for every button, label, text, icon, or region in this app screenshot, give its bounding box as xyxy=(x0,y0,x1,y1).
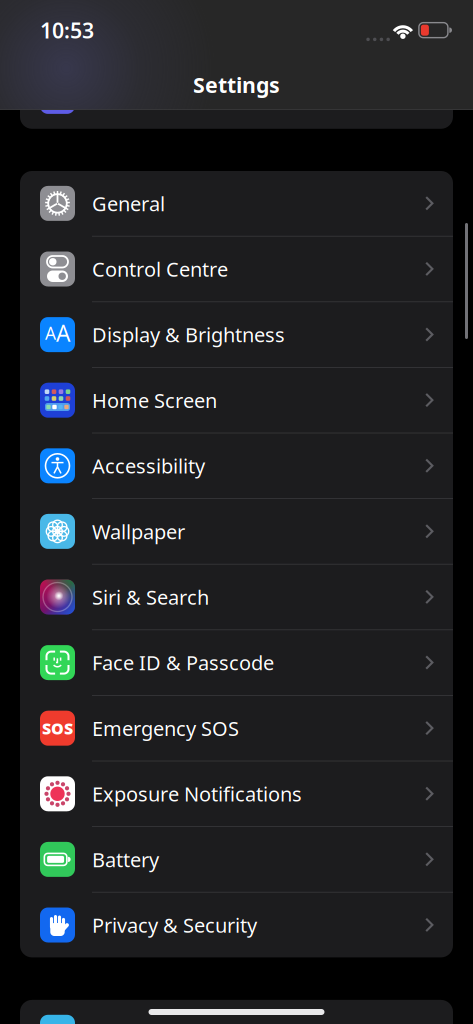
staticText: Focus xyxy=(92,83,146,110)
staticText: SOS xyxy=(42,718,73,739)
staticText: General xyxy=(92,190,165,217)
staticText: Battery xyxy=(92,846,159,873)
button[interactable]: Siri & Search xyxy=(20,565,453,629)
staticText: Privacy & Security xyxy=(92,912,257,938)
staticText: A xyxy=(45,321,56,344)
button[interactable]: App Store xyxy=(20,1000,453,1024)
staticText: Settings xyxy=(193,70,280,99)
button[interactable]: Home Screen xyxy=(20,368,453,433)
button[interactable]: Battery xyxy=(20,827,453,892)
button[interactable]: Wallpaper xyxy=(20,499,453,564)
staticText: Exposure Notifications xyxy=(92,780,302,807)
staticText: Display & Brightness xyxy=(92,321,285,348)
staticText: Home Screen xyxy=(92,387,217,413)
button[interactable]: Accessibility xyxy=(20,433,453,498)
staticText: A xyxy=(56,318,70,348)
button[interactable]: Exposure Notifications xyxy=(20,761,453,826)
button[interactable]: Control Centre xyxy=(20,237,453,301)
staticText: Emergency SOS xyxy=(92,715,239,741)
button[interactable]: General xyxy=(20,171,453,236)
staticText: Siri & Search xyxy=(92,584,209,610)
staticText: Face ID & Passcode xyxy=(92,649,274,676)
button[interactable]: Face ID & Passcode xyxy=(20,630,453,695)
staticText: Accessibility xyxy=(92,452,205,479)
staticText: Control Centre xyxy=(92,256,228,282)
staticText: Wallpaper xyxy=(92,518,185,545)
button[interactable]: SOS xyxy=(20,696,453,761)
button[interactable]: Privacy & Security xyxy=(20,893,453,957)
button[interactable]: Focus xyxy=(20,64,453,129)
staticText: 10:53 xyxy=(40,16,94,44)
button[interactable]: A xyxy=(20,302,453,367)
